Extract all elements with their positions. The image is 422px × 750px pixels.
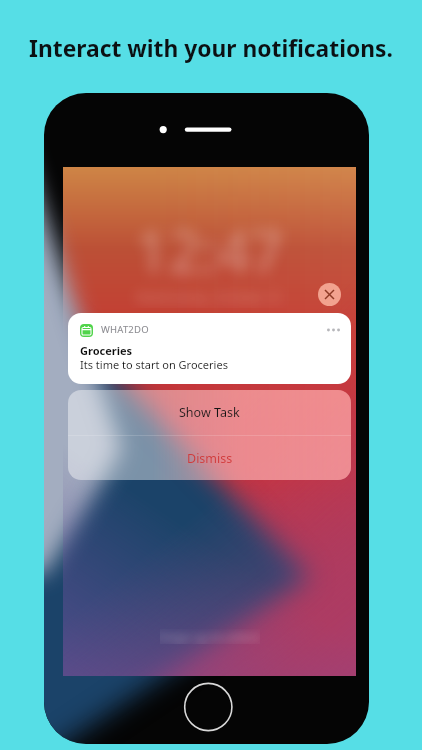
staticText: Interact with your notifications. [0, 33, 422, 64]
staticText: Swipe up to unlock [160, 629, 260, 644]
staticText: WHAT2DO [101, 323, 149, 336]
button[interactable]: Close notification [318, 283, 341, 306]
staticText: 12:47 [135, 211, 284, 290]
button[interactable]: Dismiss [68, 436, 351, 480]
staticText: Dismiss [187, 450, 233, 467]
staticText: Groceries [80, 343, 133, 358]
staticText: Show Task [179, 404, 240, 421]
staticText: Its time to start on Groceries [80, 357, 228, 372]
button[interactable]: Show Task [68, 390, 351, 435]
button[interactable]: WHAT2DO [68, 313, 351, 384]
